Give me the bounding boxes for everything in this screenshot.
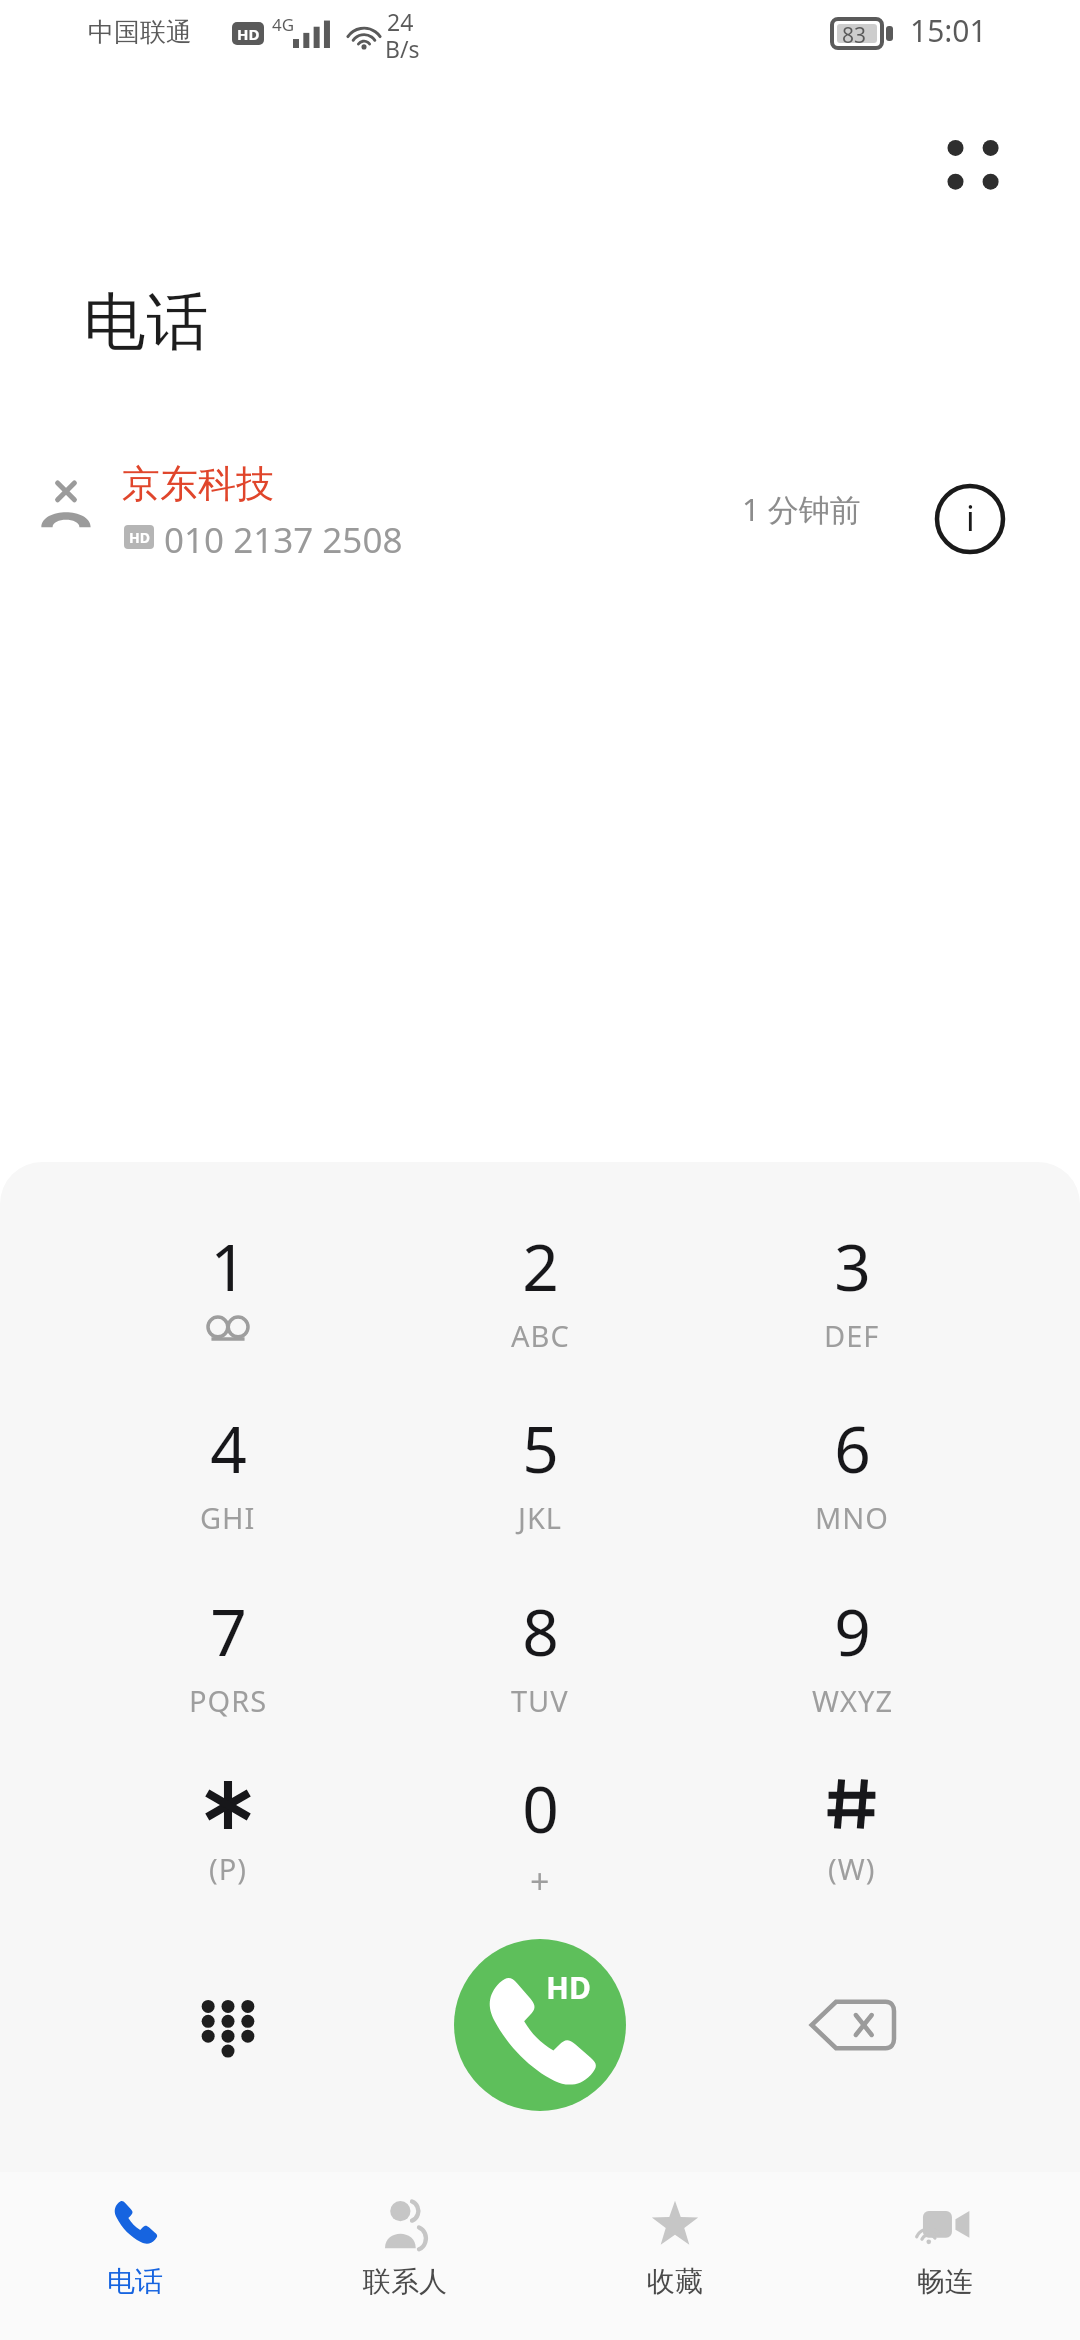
staticText: TUV xyxy=(511,1681,569,1720)
staticText: 京东科技 xyxy=(122,460,274,508)
staticText: 15:01 xyxy=(910,10,987,51)
staticText: WXYZ xyxy=(812,1681,893,1720)
staticText: DEF xyxy=(824,1316,880,1355)
staticText: 中国联通 xyxy=(88,16,192,49)
staticText: 6 xyxy=(834,1405,871,1492)
staticText: HD xyxy=(546,1967,591,2008)
button[interactable]: 电话 xyxy=(0,2172,270,2340)
button[interactable]: 7 xyxy=(124,1588,332,1756)
staticText: 畅连 xyxy=(917,2264,973,2299)
staticText: 联系人 xyxy=(363,2264,447,2299)
button[interactable]: Backspace xyxy=(772,1945,932,2105)
button[interactable]: 5 xyxy=(436,1405,644,1573)
staticText: HD xyxy=(129,528,150,547)
button[interactable]: 联系人 xyxy=(270,2172,540,2340)
button[interactable]: 畅连 xyxy=(810,2172,1080,2340)
staticText: B/s xyxy=(385,33,420,64)
staticText: JKL xyxy=(518,1498,563,1537)
staticText: 8 xyxy=(522,1588,559,1675)
staticText: ABC xyxy=(511,1316,570,1355)
button[interactable]: (W) xyxy=(748,1765,956,1933)
staticText: (P) xyxy=(209,1849,247,1888)
button[interactable]: 0 xyxy=(436,1765,644,1933)
staticText: 3 xyxy=(834,1223,871,1310)
staticText: 2 xyxy=(522,1223,559,1310)
button[interactable]: Call details xyxy=(934,483,1006,555)
button[interactable]: (P) xyxy=(124,1765,332,1933)
button[interactable]: 1 xyxy=(124,1223,332,1391)
button[interactable]: 京东科技 xyxy=(0,440,1080,585)
staticText: 4G xyxy=(272,13,295,36)
staticText: 4 xyxy=(210,1405,247,1492)
staticText: 9 xyxy=(834,1588,871,1675)
staticText: i xyxy=(966,495,975,541)
button[interactable]: 4 xyxy=(124,1405,332,1573)
staticText: 1 xyxy=(210,1223,247,1310)
staticText: 5 xyxy=(522,1405,559,1492)
button[interactable]: More options xyxy=(910,105,1040,235)
staticText: GHI xyxy=(200,1498,256,1537)
button[interactable]: 8 xyxy=(436,1588,644,1756)
button[interactable]: 3 xyxy=(748,1223,956,1391)
staticText: 7 xyxy=(210,1588,247,1675)
button[interactable]: Call xyxy=(454,1939,626,2111)
staticText: 1 分钟前 xyxy=(742,488,861,530)
button[interactable]: Hide keypad xyxy=(148,1945,308,2105)
staticText: 0 xyxy=(522,1765,559,1852)
staticText: 010 2137 2508 xyxy=(164,516,403,564)
button[interactable]: 9 xyxy=(748,1588,956,1756)
staticText: 24 xyxy=(387,6,414,37)
staticText: + xyxy=(530,1858,551,1904)
staticText: 收藏 xyxy=(647,2264,703,2299)
staticText: 电话 xyxy=(83,283,209,361)
button[interactable]: 6 xyxy=(748,1405,956,1573)
button[interactable]: 收藏 xyxy=(540,2172,810,2340)
staticText: 电话 xyxy=(107,2264,163,2299)
button[interactable]: 2 xyxy=(436,1223,644,1391)
staticText: MNO xyxy=(815,1498,889,1537)
staticText: 83 xyxy=(842,21,867,50)
staticText: PQRS xyxy=(189,1681,268,1720)
staticText: (W) xyxy=(828,1849,876,1888)
staticText: HD xyxy=(237,24,260,44)
